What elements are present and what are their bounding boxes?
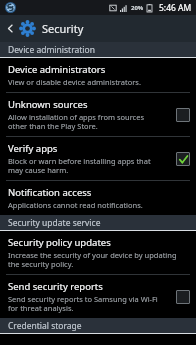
staticText: Notification access <box>8 186 92 199</box>
staticText: Allow installation of apps from sources … <box>8 112 145 131</box>
staticText: Block or warn before installing apps tha… <box>8 156 151 175</box>
staticText: Security <box>42 21 84 36</box>
staticText: Increase the security of your device by … <box>8 250 177 269</box>
button[interactable]: Security policy updates <box>0 231 196 274</box>
button[interactable]: Notification access <box>0 181 196 215</box>
staticText: Applications cannot read notifications. <box>8 200 143 210</box>
button[interactable]: Send security reports <box>0 275 196 318</box>
staticText: Send security reports <box>8 280 103 293</box>
staticText: 20% <box>131 4 144 12</box>
staticText: Security update service <box>8 217 101 229</box>
staticText: Device administrators <box>8 63 106 76</box>
staticText: Verify apps <box>8 142 58 155</box>
staticText: 5:46 AM <box>159 2 192 14</box>
staticText: Send security reports to Samsung via Wi-… <box>8 294 158 313</box>
button[interactable]: Unknown sources <box>0 93 196 136</box>
staticText: Credential storage <box>8 320 82 332</box>
staticText: Security policy updates <box>8 236 111 249</box>
button[interactable]: Verify apps <box>0 137 196 180</box>
staticText: Device administration <box>8 44 95 56</box>
button[interactable]: Back <box>0 15 20 42</box>
button[interactable]: Device administrators <box>0 58 196 92</box>
staticText: View or disable device administrators. <box>8 77 141 87</box>
staticText: Unknown sources <box>8 98 88 111</box>
